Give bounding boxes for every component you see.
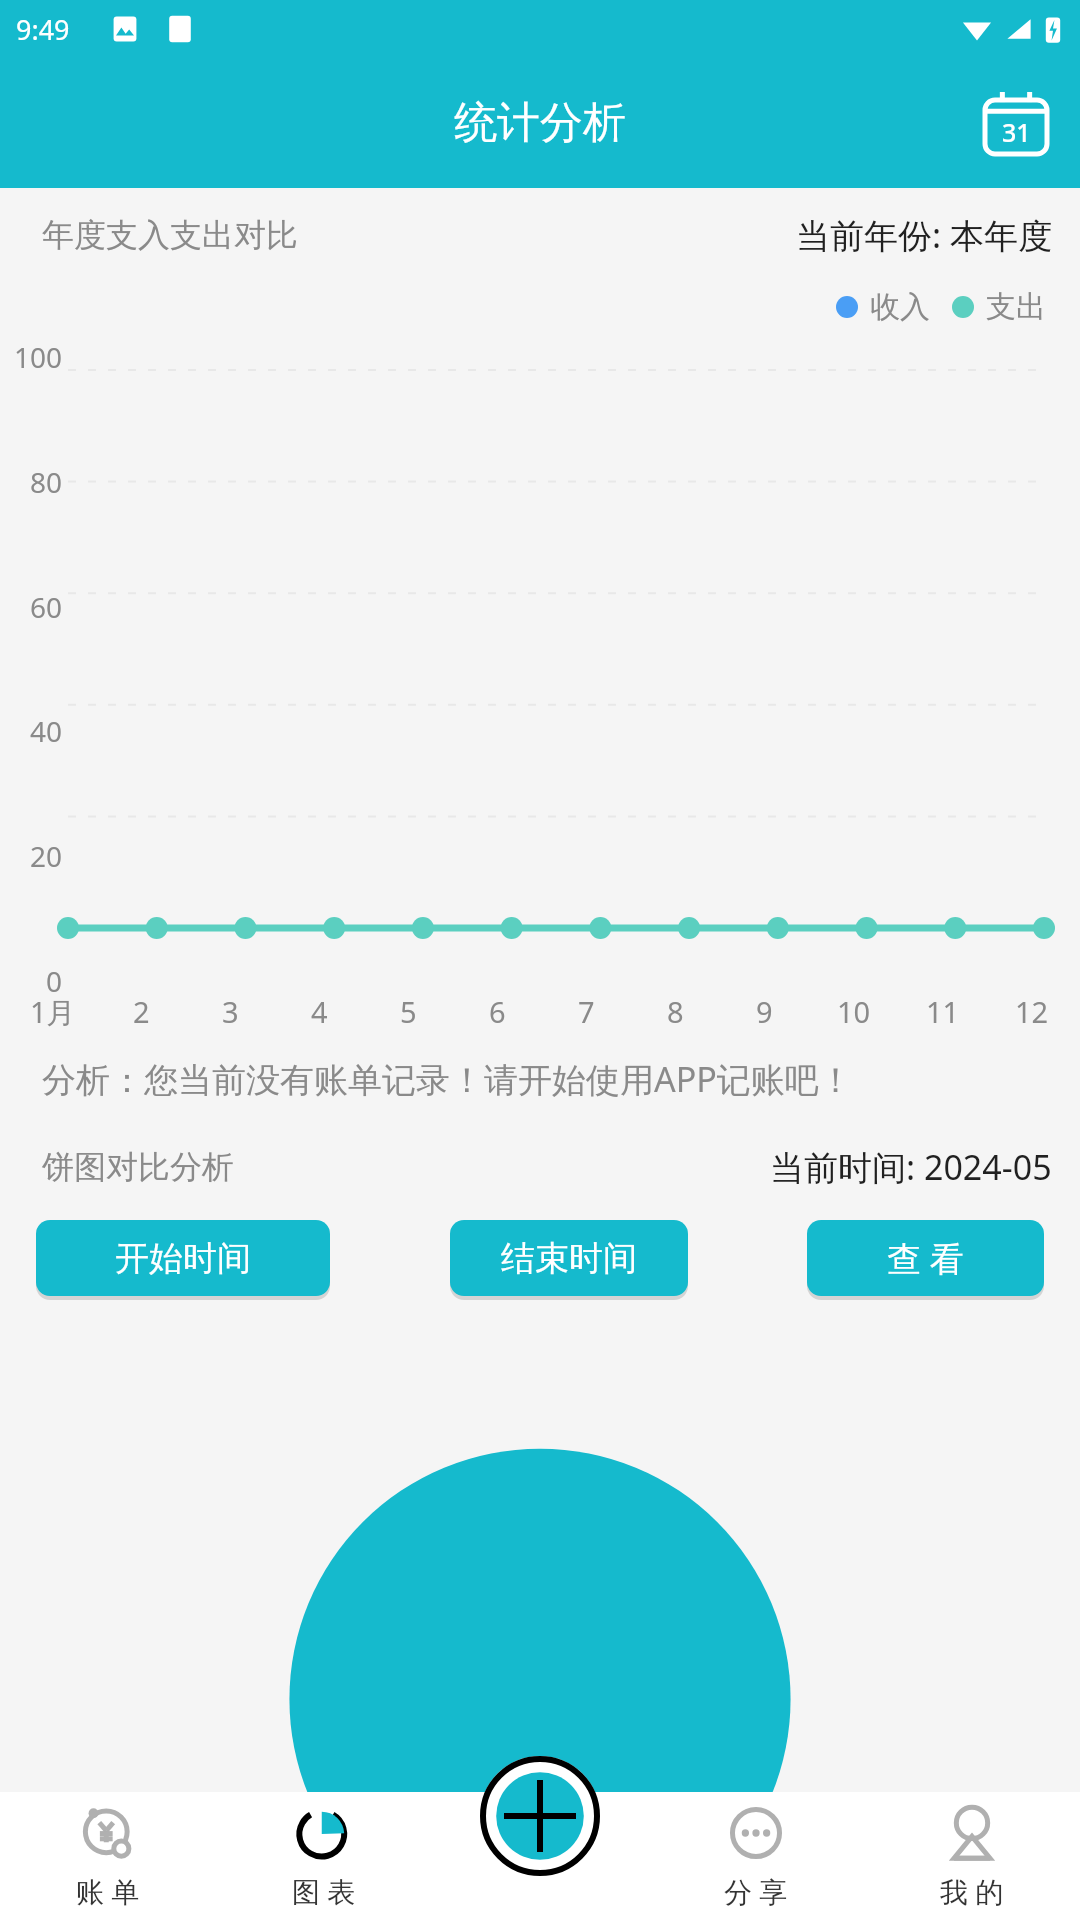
staticText: 账 单: [76, 1872, 140, 1910]
button[interactable]: 结束时间: [450, 1220, 688, 1296]
staticText: 4: [311, 992, 328, 1031]
button[interactable]: 查 看: [807, 1220, 1044, 1296]
staticText: 6: [489, 992, 506, 1031]
staticText: 当前年份: 本年度: [796, 212, 1052, 258]
staticText: 20: [8, 837, 62, 875]
staticText: 9: [756, 992, 773, 1031]
staticText: 结束时间: [501, 1237, 637, 1280]
staticText: 40: [8, 712, 62, 750]
staticText: 查 看: [887, 1235, 964, 1281]
staticText: 100: [8, 338, 62, 376]
button[interactable]: 分 享: [648, 1792, 864, 1920]
button[interactable]: 开始时间: [36, 1220, 330, 1296]
staticText: 3: [222, 992, 239, 1031]
staticText: 统计分析: [454, 96, 626, 150]
button[interactable]: 图 表: [216, 1792, 432, 1920]
button[interactable]: Calendar: [980, 87, 1052, 159]
button[interactable]: 账 单: [0, 1792, 216, 1920]
staticText: 支出: [986, 288, 1046, 326]
staticText: 我 的: [940, 1872, 1004, 1910]
staticText: 12: [1015, 992, 1049, 1031]
staticText: 1月: [30, 992, 76, 1032]
staticText: 31: [1002, 115, 1031, 149]
staticText: 60: [8, 588, 62, 626]
staticText: 2: [133, 992, 150, 1031]
staticText: 0: [8, 962, 62, 1000]
staticText: 分析：您当前没有账单记录！请开始使用APP记账吧！: [42, 1056, 853, 1102]
staticText: 当前时间: 2024-05: [770, 1144, 1052, 1190]
staticText: 8: [667, 992, 684, 1031]
staticText: 5: [400, 992, 417, 1031]
staticText: 7: [578, 992, 595, 1031]
staticText: 10: [837, 992, 871, 1031]
staticText: 80: [8, 463, 62, 501]
staticText: 收入: [870, 288, 930, 326]
staticText: 分 享: [724, 1872, 788, 1910]
staticText: 饼图对比分析: [42, 1147, 234, 1187]
button[interactable]: Add record: [480, 1756, 600, 1876]
staticText: 开始时间: [115, 1237, 251, 1280]
staticText: 9:49: [16, 11, 70, 48]
staticText: 年度支入支出对比: [42, 215, 298, 255]
button[interactable]: 我 的: [864, 1792, 1080, 1920]
staticText: 图 表: [292, 1872, 356, 1910]
staticText: 11: [926, 992, 960, 1031]
